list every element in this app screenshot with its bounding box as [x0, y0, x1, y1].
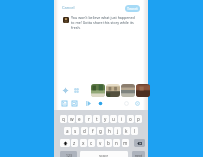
button[interactable]: k	[123, 127, 130, 135]
staticText: p	[137, 116, 140, 122]
button[interactable]: x	[80, 139, 87, 147]
staticText: j	[117, 128, 119, 134]
button[interactable]: 123	[60, 151, 77, 157]
button[interactable]: Gallery	[73, 87, 80, 94]
staticText: a	[66, 128, 69, 134]
staticText: u	[112, 116, 115, 122]
button[interactable]: e	[76, 115, 83, 123]
button[interactable]: Add another tweet	[133, 99, 142, 108]
button[interactable]: r	[85, 115, 92, 123]
staticText: z	[73, 140, 76, 146]
button[interactable]: a	[64, 127, 71, 135]
button[interactable]: g	[97, 127, 104, 135]
staticText: r	[88, 116, 90, 122]
button[interactable]: Photo	[136, 84, 150, 97]
button[interactable]: Photo	[106, 84, 120, 97]
staticText: You won't believe what just happened to …	[71, 15, 138, 30]
staticText: Cancel	[62, 5, 75, 10]
button[interactable]: b	[105, 139, 112, 147]
button[interactable]: z	[71, 139, 78, 147]
staticText: k	[125, 128, 128, 134]
button[interactable]: f	[89, 127, 96, 135]
staticText: n	[115, 140, 118, 146]
staticText: x	[82, 140, 85, 146]
button[interactable]: w	[68, 115, 75, 123]
button[interactable]: Add photo	[60, 99, 69, 108]
button[interactable]: Profile picture	[63, 17, 69, 23]
staticText: space	[99, 153, 109, 157]
staticText: g	[99, 128, 102, 134]
staticText: v	[99, 140, 102, 146]
staticText: i	[121, 116, 123, 122]
staticText: h	[108, 128, 111, 134]
staticText: s	[74, 128, 77, 134]
button[interactable]: Photo	[91, 84, 105, 97]
button[interactable]: v	[97, 139, 104, 147]
button[interactable]: Photo	[121, 84, 135, 97]
button[interactable]: Add video	[84, 99, 93, 108]
button[interactable]: d	[81, 127, 88, 135]
button[interactable]: m	[122, 139, 129, 147]
staticText: m	[123, 140, 128, 146]
staticText: d	[83, 128, 86, 134]
button[interactable]: next	[132, 151, 145, 157]
button[interactable]: space	[80, 151, 128, 157]
button[interactable]: l	[131, 127, 138, 135]
button[interactable]: Backspace	[134, 139, 145, 147]
button[interactable]: j	[114, 127, 121, 135]
button[interactable]: t	[93, 115, 100, 123]
button[interactable]: y	[102, 115, 109, 123]
staticText: c	[90, 140, 93, 146]
staticText: q	[62, 116, 65, 122]
staticText: w	[70, 116, 74, 122]
button[interactable]: Cancel	[60, 3, 77, 12]
staticText: 123	[66, 153, 72, 157]
button[interactable]: n	[113, 139, 120, 147]
button[interactable]: q	[60, 115, 67, 123]
button[interactable]: o	[127, 115, 134, 123]
button[interactable]: Shift	[60, 139, 70, 147]
staticText: l	[134, 128, 136, 134]
button[interactable]: Add GIF	[70, 99, 79, 108]
staticText: t	[96, 116, 98, 122]
button[interactable]: h	[106, 127, 113, 135]
staticText: b	[107, 140, 110, 146]
button[interactable]: c	[88, 139, 95, 147]
button[interactable]: u	[110, 115, 117, 123]
button[interactable]: Add location	[96, 99, 105, 108]
staticText: next	[135, 153, 142, 157]
staticText: y	[104, 116, 107, 122]
staticText: Tweet	[127, 6, 138, 11]
button[interactable]: p	[135, 115, 142, 123]
staticText: e	[78, 116, 81, 122]
button[interactable]: s	[72, 127, 79, 135]
button[interactable]: Character count	[122, 99, 131, 108]
button[interactable]: Camera	[62, 87, 69, 94]
staticText: f	[92, 128, 94, 134]
button[interactable]: Tweet	[125, 5, 140, 12]
button[interactable]: i	[118, 115, 125, 123]
staticText: o	[129, 116, 132, 122]
